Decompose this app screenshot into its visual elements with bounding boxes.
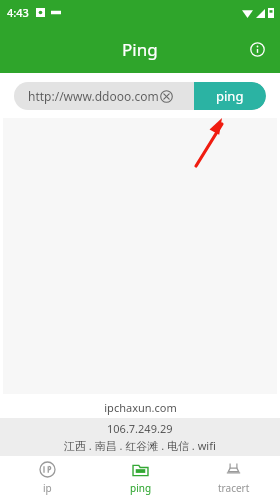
button[interactable]: http://www.ddooo.com	[14, 82, 194, 110]
button[interactable]: ip	[0, 456, 94, 500]
staticText: ipchaxun.com	[104, 400, 177, 415]
button[interactable]: ping	[94, 456, 187, 500]
staticText: ping	[130, 481, 152, 495]
staticText: tracert	[218, 481, 250, 495]
staticText: Ping	[122, 38, 158, 61]
staticText: 江西 . 南昌 . 红谷滩 . 电信 . wifi	[64, 438, 216, 453]
button[interactable]: Clear	[160, 90, 173, 103]
button[interactable]: tracert	[187, 456, 280, 500]
staticText: ip	[43, 481, 52, 495]
staticText: ping	[216, 87, 244, 105]
button[interactable]: ping	[194, 82, 266, 110]
staticText: http://www.ddooo.com	[28, 88, 159, 104]
button[interactable]: Info	[242, 34, 272, 64]
staticText: 4:43	[7, 5, 29, 20]
staticText: 106.7.249.29	[107, 421, 173, 436]
